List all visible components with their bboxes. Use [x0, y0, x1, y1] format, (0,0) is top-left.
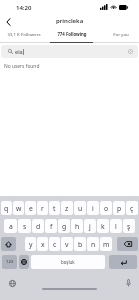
staticText: 774 Following — [57, 31, 87, 37]
button[interactable]: Shift — [1, 237, 16, 251]
staticText: ela — [15, 48, 23, 56]
button[interactable]: 774 Following — [48, 28, 95, 43]
staticText: i — [92, 204, 94, 213]
button[interactable]: Clear text — [128, 49, 133, 54]
staticText: k — [101, 222, 105, 231]
staticText: y — [29, 240, 33, 249]
button[interactable]: Emoji — [8, 279, 16, 287]
button[interactable]: v — [61, 237, 73, 251]
staticText: p — [117, 204, 122, 213]
button[interactable]: ç — [126, 201, 138, 215]
button[interactable]: 33,1 K Followers — [0, 28, 48, 43]
button[interactable]: i — [87, 201, 99, 215]
staticText: c — [53, 240, 57, 249]
staticText: s — [23, 222, 27, 231]
button[interactable]: n — [87, 237, 99, 251]
button[interactable]: f — [45, 219, 57, 233]
button[interactable]: q — [1, 201, 12, 215]
staticText: 14:20 — [16, 4, 32, 12]
staticText: l — [115, 222, 117, 231]
button[interactable]: z — [61, 201, 73, 215]
staticText: z — [65, 204, 69, 213]
button[interactable]: a — [4, 219, 17, 233]
button[interactable]: Numbers — [2, 255, 17, 269]
staticText: ç — [130, 204, 134, 213]
button[interactable]: j — [84, 219, 96, 233]
staticText: w — [16, 204, 22, 213]
staticText: f — [50, 222, 53, 231]
button[interactable]: g — [58, 219, 70, 233]
button[interactable]: Return — [109, 255, 137, 269]
button[interactable]: For you — [94, 28, 139, 43]
staticText: princleka — [56, 17, 84, 25]
staticText: No users found — [4, 63, 40, 70]
button[interactable]: p — [113, 201, 125, 215]
staticText: t — [53, 204, 56, 213]
staticText: m — [103, 240, 110, 249]
button[interactable]: x — [37, 237, 48, 251]
button[interactable]: k — [97, 219, 109, 233]
staticText: 123 — [6, 259, 14, 265]
staticText: d — [36, 222, 41, 231]
button[interactable]: Back — [0, 16, 16, 28]
button[interactable]: e — [25, 201, 36, 215]
staticText: r — [41, 204, 44, 213]
button[interactable]: Next keyboard — [19, 255, 29, 269]
button[interactable]: h — [71, 219, 83, 233]
button[interactable]: ş — [123, 219, 135, 233]
button[interactable]: d — [32, 219, 44, 233]
staticText: boşluk — [61, 259, 75, 265]
staticText: n — [91, 240, 96, 249]
button[interactable]: s — [18, 219, 31, 233]
button[interactable]: m — [100, 237, 112, 251]
button[interactable]: Dictation — [124, 279, 132, 287]
button[interactable]: y — [25, 237, 36, 251]
staticText: v — [65, 240, 69, 249]
staticText: o — [104, 204, 109, 213]
button[interactable]: Backspace — [117, 237, 138, 251]
staticText: u — [78, 204, 83, 213]
staticText: e — [29, 204, 33, 213]
staticText: h — [75, 222, 80, 231]
button[interactable]: ela — [1, 45, 138, 58]
staticText: For you — [113, 31, 129, 37]
staticText: b — [78, 240, 83, 249]
button[interactable]: w — [13, 201, 24, 215]
button[interactable]: u — [74, 201, 86, 215]
button[interactable]: r — [37, 201, 48, 215]
staticText: g — [62, 222, 67, 231]
staticText: a — [9, 222, 13, 231]
staticText: x — [41, 240, 45, 249]
staticText: ş — [127, 222, 131, 231]
button[interactable]: t — [49, 201, 60, 215]
staticText: j — [89, 222, 91, 231]
button[interactable]: boşluk — [31, 255, 105, 269]
button[interactable]: b — [74, 237, 86, 251]
button[interactable]: c — [49, 237, 60, 251]
button[interactable]: o — [100, 201, 112, 215]
staticText: 33,1 K Followers — [7, 31, 41, 37]
button[interactable]: l — [110, 219, 122, 233]
staticText: q — [4, 204, 9, 213]
